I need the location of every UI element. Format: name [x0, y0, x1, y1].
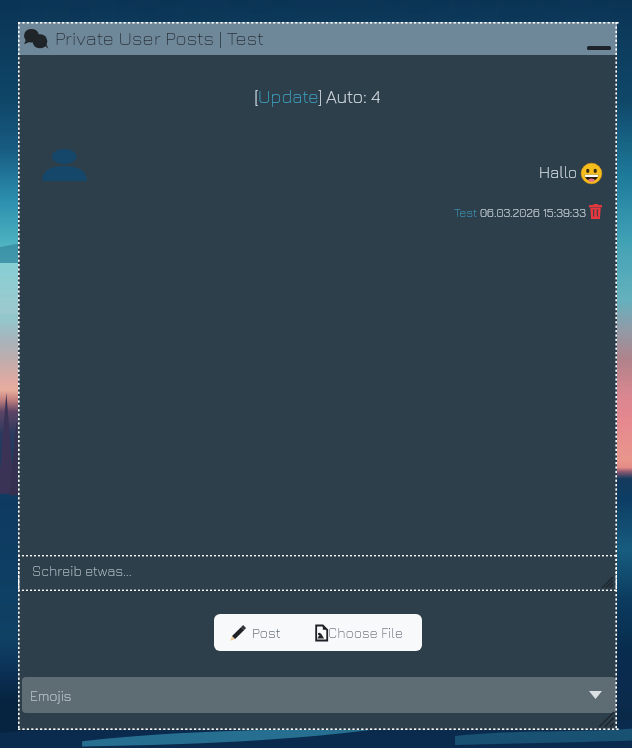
staticText: Hallo [539, 163, 581, 182]
staticText: Test [454, 205, 480, 219]
button[interactable]: Choose File [312, 614, 422, 651]
staticText: Choose File [328, 624, 403, 641]
button[interactable]: Delete message [589, 204, 602, 219]
staticText: Emojis [30, 687, 72, 704]
staticText: 06.03.2026 15:39:33 [480, 205, 589, 219]
staticText: Post [252, 624, 281, 641]
button[interactable]: Minimize window [580, 22, 617, 55]
staticText: [Update] Auto: 4 [18, 86, 617, 107]
button[interactable]: Schreib etwas... [18, 555, 617, 591]
staticText: Schreib etwas... [32, 562, 132, 579]
staticText: Private User Posts | Test [55, 26, 264, 49]
button[interactable]: Emojis [22, 677, 616, 713]
button[interactable]: Post [214, 614, 312, 651]
